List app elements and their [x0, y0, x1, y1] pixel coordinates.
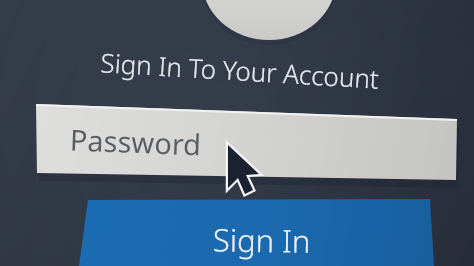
button[interactable]: Password input field	[36, 104, 457, 176]
button[interactable]	[80, 199, 433, 266]
